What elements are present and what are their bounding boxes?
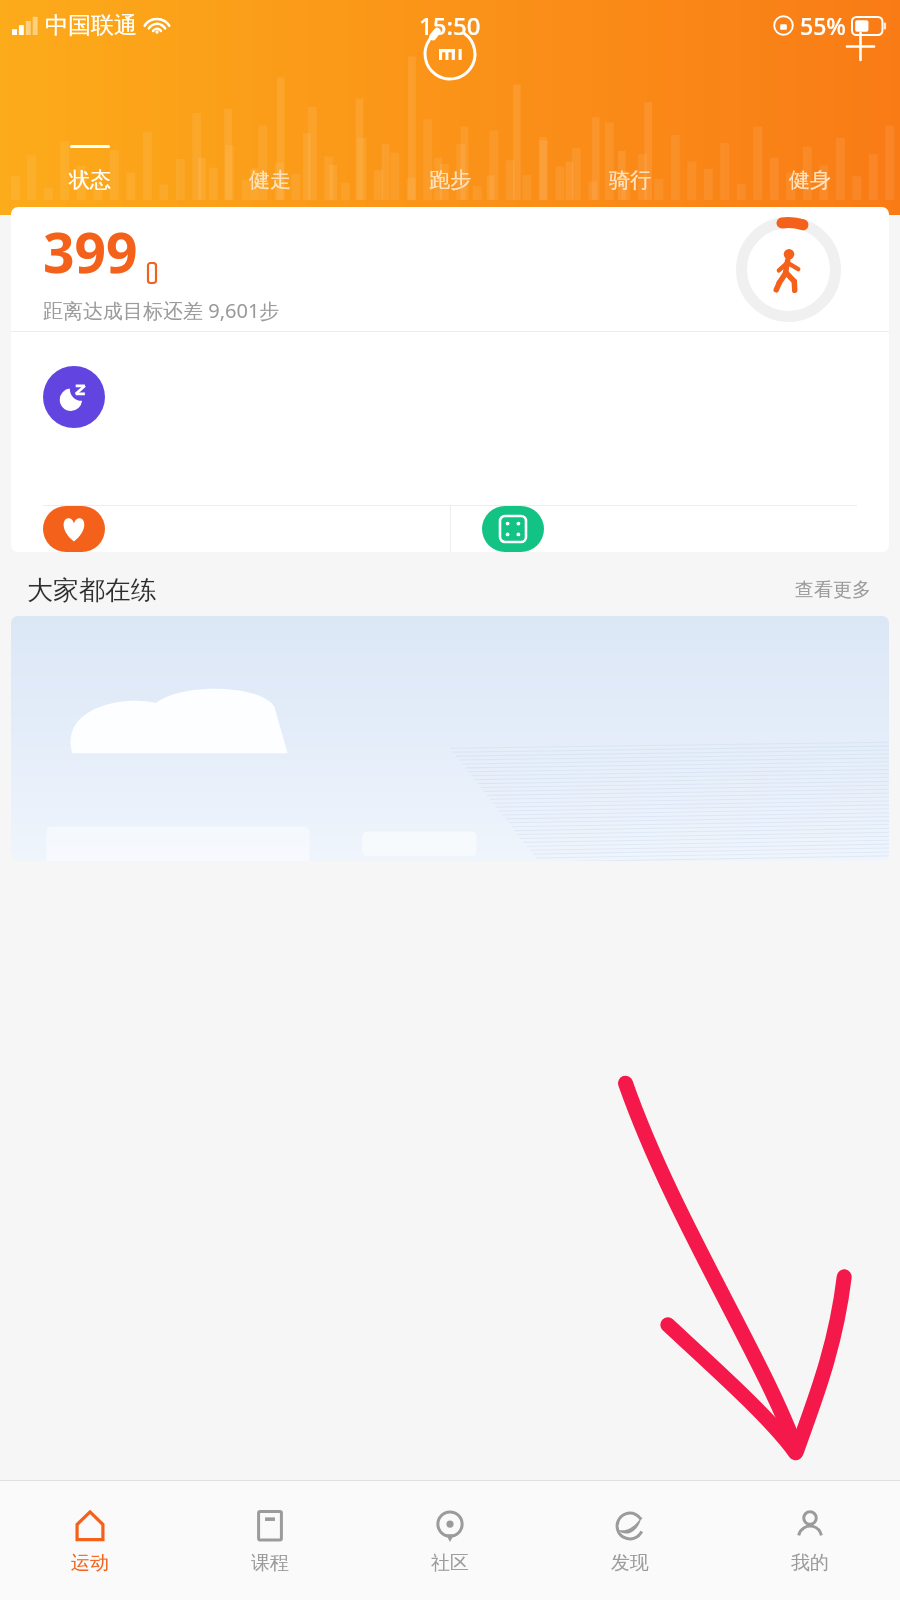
button[interactable]: 状态 <box>0 145 180 207</box>
button[interactable]: 跑步 <box>360 145 540 207</box>
staticText: 状态 <box>69 167 111 193</box>
button[interactable] <box>11 332 889 505</box>
staticText: 运动 <box>71 1551 109 1575</box>
staticText: 骑行 <box>609 167 651 193</box>
staticText: 55% <box>800 10 846 41</box>
button[interactable]: Weight <box>450 506 889 552</box>
button[interactable]: 399 <box>11 207 889 331</box>
button[interactable]: 运动 <box>0 1481 180 1600</box>
button[interactable] <box>11 616 889 861</box>
staticText: 我的 <box>791 1551 829 1575</box>
button[interactable]: 我的 <box>720 1481 900 1600</box>
staticText: 399 <box>43 214 138 289</box>
staticText: 健身 <box>789 167 831 193</box>
staticText: 发现 <box>611 1551 649 1575</box>
button[interactable]: 查看更多 <box>790 573 876 607</box>
staticText: 查看更多 <box>795 578 871 602</box>
button[interactable]: 骑行 <box>540 145 720 207</box>
button[interactable]: 健身 <box>720 145 900 207</box>
staticText: 社区 <box>431 1551 469 1575</box>
button[interactable]: 社区 <box>360 1481 540 1600</box>
staticText: 距离达成目标还差 9,601步 <box>43 297 280 324</box>
button[interactable]: 课程 <box>180 1481 360 1600</box>
staticText: 健走 <box>249 167 291 193</box>
staticText: 15:50 <box>419 9 481 42</box>
staticText: 课程 <box>251 1551 289 1575</box>
staticText: 跑步 <box>429 167 471 193</box>
staticText: 中国联通 <box>45 11 137 40</box>
button[interactable]: Heart rate <box>11 506 450 552</box>
button[interactable]: 发现 <box>540 1481 720 1600</box>
staticText: 大家都在练 <box>27 574 157 607</box>
button[interactable]: 健走 <box>180 145 360 207</box>
button[interactable]: Step goal progress <box>736 217 841 322</box>
button[interactable]: Add <box>832 18 888 74</box>
